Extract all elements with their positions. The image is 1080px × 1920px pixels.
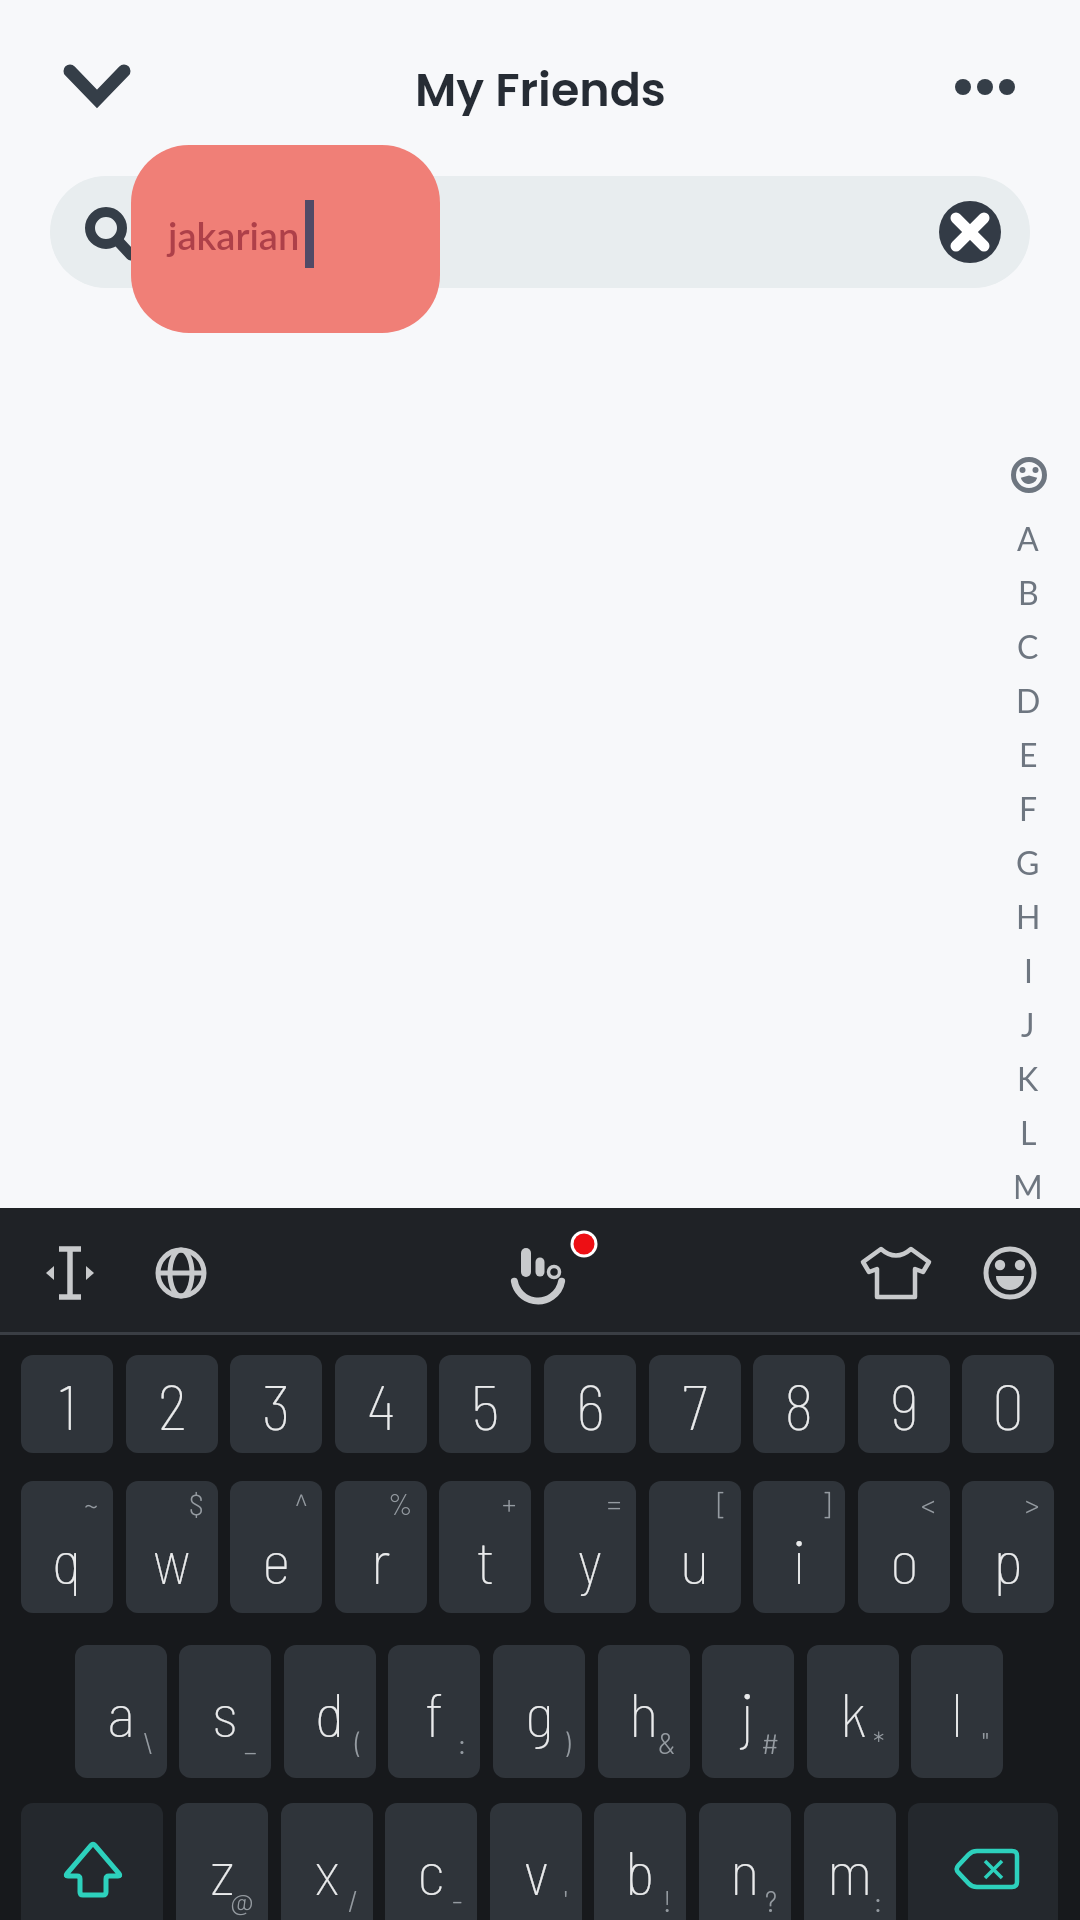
staticText: [: [717, 1485, 727, 1521]
staticText: 8: [784, 1366, 814, 1443]
staticText: :: [458, 1724, 466, 1760]
staticText: 6: [576, 1366, 605, 1443]
staticText: ): [564, 1724, 571, 1760]
staticText: (: [355, 1724, 362, 1760]
staticText: G: [1016, 843, 1040, 881]
staticText: 5: [471, 1366, 500, 1443]
staticText: I: [1024, 951, 1033, 989]
staticText: n: [730, 1833, 760, 1907]
staticText: E: [1019, 735, 1038, 773]
staticText: &: [658, 1724, 676, 1760]
staticText: r: [371, 1522, 391, 1596]
staticText: x: [315, 1833, 340, 1907]
staticText: b: [625, 1833, 655, 1907]
staticText: ]: [821, 1485, 831, 1521]
staticText: ": [982, 1724, 989, 1760]
staticText: $: [189, 1485, 204, 1521]
staticText: o: [890, 1522, 919, 1596]
staticText: ^: [295, 1485, 308, 1521]
staticText: s: [212, 1675, 238, 1749]
staticText: jakarian: [168, 212, 300, 258]
staticText: 4: [367, 1366, 396, 1443]
staticText: 9: [890, 1366, 919, 1443]
staticText: 1: [58, 1366, 77, 1443]
staticText: m: [827, 1833, 873, 1907]
staticText: H: [1016, 897, 1041, 935]
staticText: q: [52, 1522, 82, 1596]
staticText: My Friends: [415, 58, 666, 116]
staticText: B: [1018, 573, 1039, 611]
staticText: i: [792, 1522, 807, 1596]
staticText: 2: [158, 1366, 187, 1443]
staticText: /: [348, 1882, 359, 1918]
staticText: ~: [84, 1485, 99, 1521]
staticText: L: [1020, 1113, 1037, 1151]
staticText: j: [741, 1675, 755, 1749]
staticText: h: [629, 1675, 659, 1749]
staticText: y: [578, 1522, 602, 1596]
staticText: D: [1016, 681, 1041, 719]
staticText: w: [153, 1522, 191, 1596]
staticText: *: [873, 1724, 885, 1760]
staticText: z: [210, 1833, 235, 1907]
staticText: v: [524, 1833, 549, 1907]
staticText: J: [1021, 1005, 1035, 1043]
staticText: +: [502, 1485, 517, 1521]
staticText: K: [1017, 1059, 1039, 1097]
staticText: d: [315, 1675, 345, 1749]
staticText: 7: [682, 1366, 708, 1443]
staticText: @: [230, 1882, 254, 1918]
staticText: !: [663, 1882, 672, 1918]
staticText: a: [107, 1675, 135, 1749]
staticText: =: [607, 1485, 622, 1521]
staticText: ?: [765, 1882, 777, 1918]
staticText: %: [388, 1485, 413, 1521]
staticText: g: [525, 1675, 554, 1749]
staticText: >: [1025, 1485, 1040, 1521]
staticText: :: [874, 1882, 882, 1918]
staticText: p: [993, 1522, 1023, 1596]
staticText: c: [417, 1833, 445, 1907]
staticText: -: [452, 1882, 463, 1918]
staticText: 0: [992, 1366, 1024, 1443]
staticText: l: [951, 1675, 963, 1749]
staticText: _: [244, 1724, 257, 1760]
staticText: ': [564, 1882, 568, 1918]
staticText: F: [1019, 789, 1038, 827]
staticText: u: [680, 1522, 710, 1596]
staticText: <: [921, 1485, 936, 1521]
staticText: 3: [262, 1366, 291, 1443]
staticText: A: [1017, 519, 1039, 557]
staticText: C: [1017, 627, 1039, 665]
staticText: e: [262, 1522, 291, 1596]
staticText: #: [761, 1724, 780, 1760]
staticText: k: [840, 1675, 867, 1749]
staticText: f: [425, 1675, 444, 1749]
staticText: t: [476, 1522, 495, 1596]
staticText: \: [142, 1724, 153, 1760]
staticText: M: [1013, 1167, 1043, 1205]
